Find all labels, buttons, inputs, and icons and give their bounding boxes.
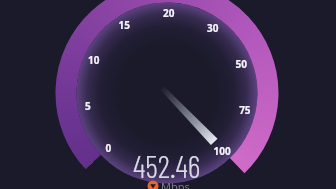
button[interactable] (0, 0, 336, 189)
